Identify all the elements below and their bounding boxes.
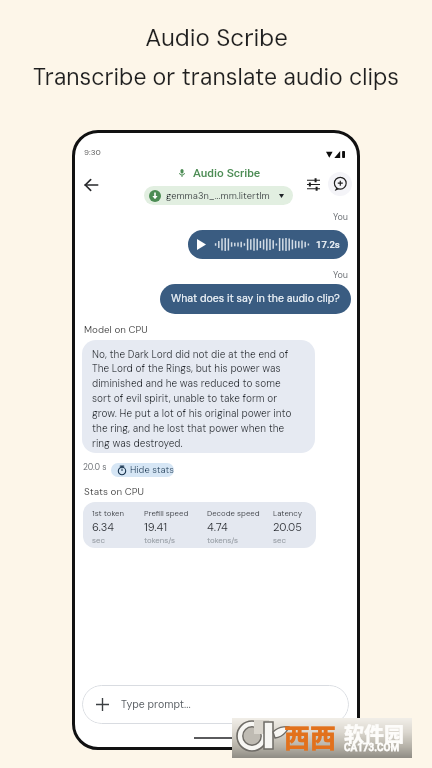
button[interactable]: 17.2s [188,230,348,259]
staticText: 20.05 [273,520,302,534]
staticText: 17.2s [316,239,340,250]
staticText: sec [92,535,105,545]
staticText: Latency [273,508,303,518]
staticText: Stats on CPU [84,485,144,498]
staticText: 西西 [284,718,337,756]
button[interactable]: Type prompt... [82,685,349,724]
staticText: Hide stats [130,464,174,476]
staticText: Audio Scribe [145,22,288,53]
staticText: 4.74 [207,520,228,534]
staticText: 1st token [92,508,125,518]
button[interactable]: gemma3n_...mm.litertlm [144,186,293,205]
staticText: 20.0 s [83,462,107,473]
staticText: sec [273,535,286,545]
staticText: Transcribe or translate audio clips [33,62,399,92]
staticText: You [72,269,348,281]
button[interactable]: New chat [328,172,352,196]
button[interactable]: Back [78,172,104,198]
staticText: Audio Scribe [193,166,261,180]
staticText: You [72,211,348,223]
staticText: 软件园 [344,719,404,748]
button[interactable]: No, the Dark Lord did not die at the end… [82,340,315,453]
staticText: 9:30 [84,147,101,157]
staticText: Model on CPU [84,323,148,336]
staticText: 6.34 [92,520,115,534]
staticText: Type prompt... [121,698,191,712]
button[interactable]: Model configuration [301,172,325,196]
staticText: Decode speed [207,508,260,518]
staticText: No, the Dark Lord did not die at the end… [92,348,300,450]
staticText: CA173.COM [344,742,400,754]
staticText: gemma3n_...mm.litertlm [166,190,270,202]
staticText: tokens/s [144,535,176,545]
button[interactable]: Hide stats [111,463,174,477]
button[interactable]: What does it say in the audio clip? [160,284,351,314]
staticText: tokens/s [207,535,239,545]
staticText: 19.41 [144,520,168,534]
staticText: Prefill speed [144,508,189,518]
staticText: What does it say in the audio clip? [171,292,340,306]
